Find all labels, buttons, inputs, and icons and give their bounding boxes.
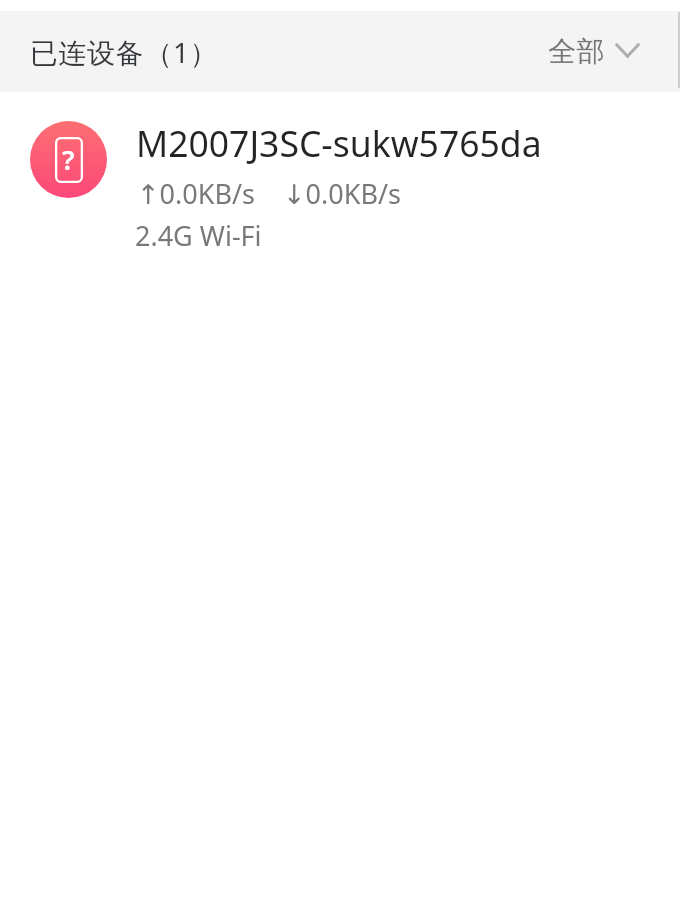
staticText: ↓0.0KB/s (283, 175, 401, 212)
staticText: 全部 (548, 34, 605, 69)
button[interactable]: 全部 (536, 11, 664, 92)
staticText: ? (62, 141, 75, 178)
staticText: M2007J3SC-sukw5765da (136, 119, 542, 167)
staticText: ↑0.0KB/s (137, 175, 255, 212)
staticText: 2.4G Wi-Fi (135, 217, 262, 254)
staticText: 已连设备（1） (30, 33, 219, 71)
other: Filter devices (615, 43, 640, 58)
button[interactable]: ? (0, 100, 680, 260)
